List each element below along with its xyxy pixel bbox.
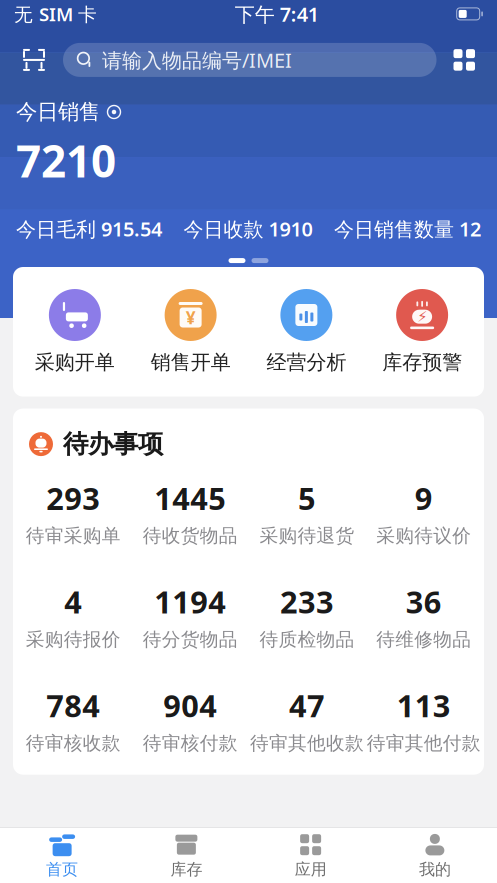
staticText: 待审核收款 [26, 732, 121, 755]
staticText: 5 [298, 478, 316, 518]
staticText: 请输入物品编号/IMEI [102, 47, 292, 73]
staticText: 首页 [46, 860, 78, 879]
button[interactable]: 经营分析 [248, 287, 364, 377]
staticText: 待审核付款 [143, 732, 238, 755]
staticText: 下午 7:41 [235, 1, 319, 27]
button[interactable]: 应用 [248, 827, 373, 883]
staticText: 待维修物品 [376, 628, 471, 651]
button[interactable]: 4 [15, 571, 132, 661]
button[interactable]: 9 [365, 468, 482, 557]
button[interactable]: 首页 [0, 827, 124, 883]
button[interactable]: 113 [365, 675, 482, 765]
button[interactable]: 47 [248, 675, 365, 765]
staticText: 784 [46, 685, 100, 726]
button[interactable]: 5 [248, 468, 365, 557]
button[interactable]: 今日销售 [16, 99, 481, 125]
staticText: 今日毛利 915.54 [16, 215, 162, 242]
button[interactable]: 904 [132, 675, 249, 765]
staticText: 经营分析 [266, 350, 346, 375]
staticText: 库存 [170, 860, 202, 879]
staticText: 7210 [16, 131, 116, 189]
staticText: 1445 [154, 478, 226, 518]
staticText: 销售开单 [151, 350, 231, 375]
staticText: 应用 [295, 860, 327, 879]
staticText: 233 [280, 581, 334, 622]
staticText: 采购待退货 [259, 524, 354, 547]
button[interactable]: 扫码 [18, 44, 50, 76]
staticText: 9 [415, 478, 433, 518]
staticText: 904 [163, 685, 217, 726]
staticText: 采购开单 [35, 350, 115, 375]
button[interactable]: ¥ [133, 287, 249, 377]
staticText: 1194 [154, 581, 226, 622]
button[interactable]: 293 [15, 468, 132, 557]
staticText: 我的 [419, 860, 451, 879]
button[interactable]: 36 [365, 571, 482, 661]
staticText: 库存预警 [382, 350, 462, 375]
button[interactable]: 784 [15, 675, 132, 765]
staticText: 今日收款 1910 [183, 215, 312, 242]
staticText: 待审其他收款 [250, 732, 364, 755]
staticText: 47 [289, 685, 325, 726]
button[interactable]: 采购开单 [17, 287, 133, 377]
button[interactable]: 请输入物品编号/IMEI [63, 43, 436, 77]
staticText: 待分货物品 [143, 628, 238, 651]
button[interactable]: 233 [248, 571, 365, 661]
staticText: 293 [46, 478, 100, 518]
button[interactable]: 更多应用 [449, 45, 479, 75]
button[interactable]: 我的 [373, 827, 497, 883]
staticText: ¥ [186, 306, 196, 329]
staticText: 36 [406, 581, 442, 622]
staticText: 采购待报价 [26, 628, 121, 651]
staticText: 待收货物品 [143, 524, 238, 547]
staticText: 待办事项 [63, 429, 163, 460]
staticText: ⚡︎ [417, 308, 427, 325]
staticText: 待审采购单 [26, 524, 121, 547]
button[interactable]: 1445 [132, 468, 249, 557]
staticText: 采购待议价 [376, 524, 471, 547]
staticText: 今日销售 [16, 99, 100, 125]
button[interactable]: ⚡︎ [364, 287, 480, 377]
staticText: 113 [397, 685, 451, 726]
button[interactable]: 1194 [132, 571, 249, 661]
button[interactable]: 库存 [124, 827, 248, 883]
staticText: 今日销售数量 12 [334, 215, 481, 242]
staticText: 无 SIM 卡 [14, 1, 97, 26]
staticText: 待质检物品 [259, 628, 354, 651]
staticText: 待审其他付款 [367, 732, 481, 755]
staticText: 4 [64, 581, 82, 622]
